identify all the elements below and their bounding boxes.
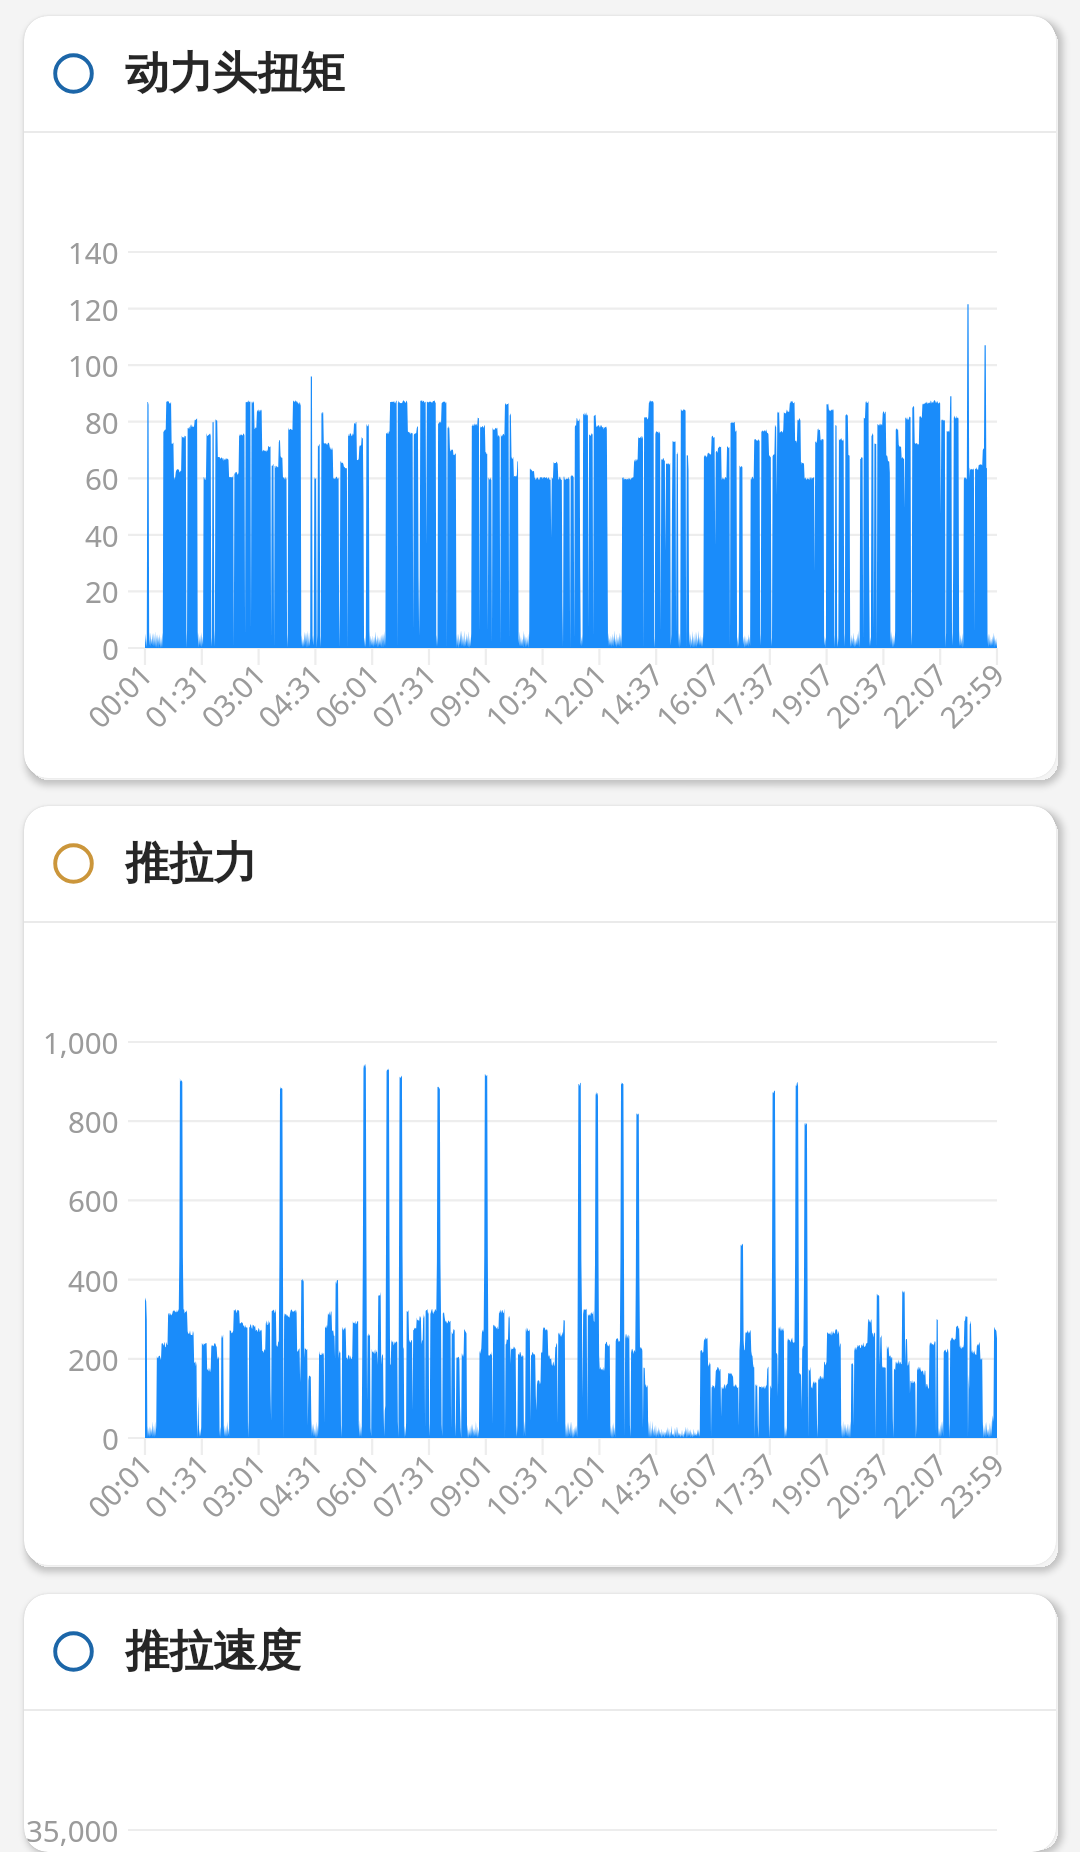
button[interactable]: Toggle 动力头扭矩 series — [24, 16, 1056, 778]
button[interactable]: Toggle 动力头扭矩 series — [53, 53, 94, 94]
button[interactable]: Toggle 推拉速度 series — [53, 1631, 94, 1672]
button[interactable]: Toggle 推拉速度 series — [24, 1594, 1056, 1852]
button[interactable]: Toggle 推拉力 series — [24, 806, 1056, 1565]
staticText: 推拉力 — [125, 836, 257, 891]
staticText: 动力头扭矩 — [125, 46, 345, 101]
staticText: 推拉速度 — [125, 1624, 301, 1679]
button[interactable]: Toggle 推拉力 series — [53, 843, 94, 884]
